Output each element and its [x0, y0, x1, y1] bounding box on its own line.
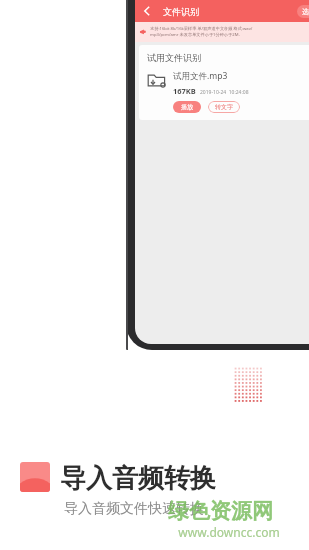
staticText: 导入音频转换	[60, 462, 216, 495]
staticText: 选	[302, 7, 309, 16]
button[interactable]: 播放	[173, 101, 201, 113]
button[interactable]: 选	[297, 5, 309, 18]
staticText: 167KB	[173, 86, 196, 96]
staticText: mp3/pcm/amr 未发言单文件小于1分钟小于2M。	[150, 32, 243, 38]
staticText: 导入音频文件快速转换	[64, 500, 204, 518]
staticText: 文件识别	[163, 6, 199, 17]
staticText: 试用文件识别	[147, 52, 201, 63]
staticText: www.downcc.com	[178, 524, 280, 540]
staticText: 绿色资源网	[168, 498, 273, 524]
staticText: 试用文件.mp3	[173, 70, 228, 82]
button[interactable]: 转文字	[208, 101, 240, 113]
button[interactable]: Back	[139, 3, 155, 19]
staticText: 2019-10-24 10:24:08	[200, 89, 249, 96]
staticText: 播放	[181, 103, 193, 111]
staticText: 支持:16bit 8k/16k采样率 单/双声道中文音频 格式:wav/	[150, 26, 253, 32]
staticText: 转文字	[215, 103, 233, 111]
